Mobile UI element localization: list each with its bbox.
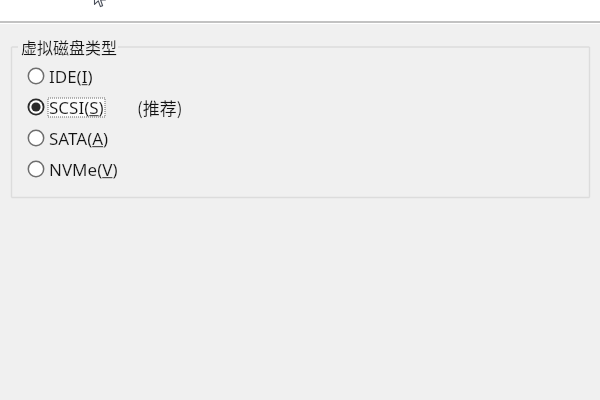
staticText: SCSI(S) <box>49 96 104 119</box>
button[interactable]: IDE(I) <box>27 63 93 89</box>
staticText: SATA(A) <box>49 127 109 150</box>
button[interactable]: SCSI(S) <box>27 94 104 120</box>
staticText: (推荐) <box>137 95 183 120</box>
button[interactable]: NVMe(V) <box>27 156 118 182</box>
staticText: NVMe(V) <box>49 158 118 181</box>
button[interactable]: SATA(A) <box>27 125 109 151</box>
staticText: IDE(I) <box>49 65 93 88</box>
staticText: 虚拟磁盘类型 <box>21 35 118 58</box>
other: Mouse pointer <box>90 0 110 12</box>
